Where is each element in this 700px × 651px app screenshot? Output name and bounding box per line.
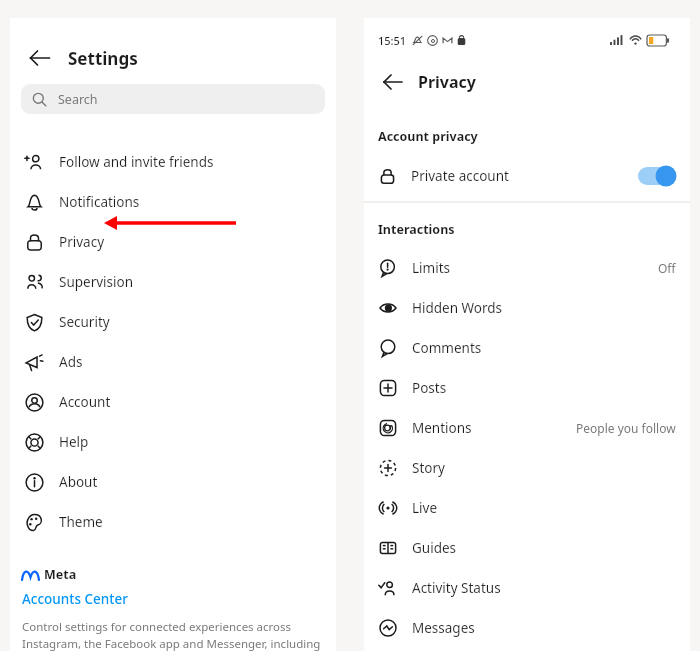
staticText: About (59, 473, 98, 491)
button[interactable]: Notifications (10, 182, 336, 222)
button[interactable]: Help (10, 422, 336, 462)
button[interactable]: Account (10, 382, 336, 422)
staticText: Hidden Words (412, 299, 503, 317)
staticText: Interactions (378, 221, 455, 238)
staticText: People you follow (576, 420, 676, 436)
staticText: Story (412, 459, 445, 477)
staticText: Security (59, 313, 110, 331)
button[interactable]: Comments (364, 328, 690, 368)
staticText: Accounts Center (22, 590, 128, 608)
button[interactable]: Follow and invite friends (10, 142, 336, 182)
button[interactable]: Hidden Words (364, 288, 690, 328)
button[interactable]: Guides (364, 528, 690, 568)
staticText: Guides (412, 539, 457, 557)
button[interactable]: Privacy (10, 222, 336, 262)
button[interactable]: Posts (364, 368, 690, 408)
staticText: Privacy (418, 71, 476, 93)
button[interactable]: About (10, 462, 336, 502)
staticText: Supervision (59, 273, 134, 291)
staticText: Off (658, 260, 676, 276)
staticText: Help (59, 433, 89, 451)
button[interactable]: Ads (10, 342, 336, 382)
staticText: Search (58, 91, 98, 108)
button[interactable]: Mentions (364, 408, 690, 448)
staticText: Ads (59, 353, 83, 371)
staticText: 15:51 (378, 33, 407, 48)
button[interactable]: Messages (364, 608, 690, 648)
staticText: Posts (412, 379, 447, 397)
button[interactable]: Private account (364, 156, 690, 196)
staticText: Settings (68, 47, 138, 70)
staticText: Live (412, 499, 438, 517)
button[interactable]: Search (21, 84, 325, 114)
staticText: Notifications (59, 193, 140, 211)
staticText: Meta (44, 566, 77, 583)
button[interactable]: Story (364, 448, 690, 488)
staticText: Account privacy (378, 128, 478, 145)
button[interactable]: Activity Status (364, 568, 690, 608)
staticText: Account (59, 393, 111, 411)
staticText: Theme (59, 513, 103, 531)
staticText: Control settings for connected experienc… (22, 619, 328, 651)
staticText: Private account (411, 167, 509, 185)
button[interactable]: Live (364, 488, 690, 528)
button[interactable]: Supervision (10, 262, 336, 302)
button[interactable]: Limits (364, 248, 690, 288)
staticText: Messages (412, 619, 475, 637)
staticText: Limits (412, 259, 451, 277)
button[interactable]: Back (374, 63, 412, 101)
staticText: Follow and invite friends (59, 153, 214, 171)
button[interactable]: Theme (10, 502, 336, 542)
staticText: Comments (412, 339, 482, 357)
button[interactable]: Back (20, 38, 60, 78)
button[interactable]: Security (10, 302, 336, 342)
staticText: Mentions (412, 419, 472, 437)
staticText: Activity Status (412, 579, 501, 597)
staticText: Privacy (59, 233, 105, 251)
button[interactable]: Accounts Center (22, 590, 128, 608)
